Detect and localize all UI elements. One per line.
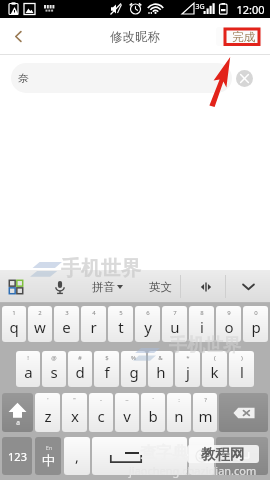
- button[interactable]: !: [16, 351, 40, 387]
- staticText: m: [198, 406, 213, 426]
- button[interactable]: Shift: [2, 393, 33, 432]
- button[interactable]: Keyboard menu: [3, 270, 29, 303]
- staticText: c: [97, 406, 105, 426]
- button[interactable]: %: [121, 351, 146, 387]
- staticText: 1: [12, 309, 16, 317]
- staticText: 5: [119, 309, 123, 317]
- button[interactable]: Back: [0, 18, 36, 55]
- staticText: h: [156, 362, 166, 382]
- button[interactable]: 完成: [216, 27, 262, 46]
- button[interactable]: Backspace: [219, 393, 268, 432]
- button[interactable]: Hide keyboard: [233, 270, 263, 303]
- staticText: d: [75, 362, 85, 382]
- staticText: $: [105, 354, 109, 362]
- button[interactable]: ): [229, 351, 254, 387]
- staticText: `: [152, 396, 154, 404]
- staticText: 7: [173, 309, 177, 317]
- staticText: 8: [200, 309, 204, 317]
- staticText: 奈: [18, 71, 29, 85]
- button[interactable]: 4: [81, 306, 106, 342]
- staticText: *: [186, 354, 190, 362]
- staticText: t: [118, 317, 124, 337]
- staticText: 4: [92, 309, 96, 317]
- button[interactable]: @: [42, 351, 66, 387]
- button[interactable]: Resize keyboard: [192, 270, 220, 303]
- staticText: ~: [125, 396, 129, 404]
- button[interactable]: 拼音: [92, 270, 123, 303]
- staticText: z: [44, 406, 52, 426]
- button[interactable]: 奈: [11, 63, 232, 93]
- button[interactable]: En: [35, 437, 61, 475]
- staticText: #: [78, 354, 82, 362]
- button[interactable]: :: [167, 393, 191, 432]
- button[interactable]: Space: [92, 437, 187, 475]
- button[interactable]: 5: [108, 306, 133, 342]
- button[interactable]: (: [202, 351, 227, 387]
- staticText: 教程网: [201, 445, 245, 463]
- staticText: p: [251, 317, 261, 337]
- button[interactable]: Enter: [216, 437, 268, 475]
- staticText: r: [90, 317, 97, 337]
- staticText: s: [50, 362, 58, 382]
- button[interactable]: &: [148, 351, 173, 387]
- button[interactable]: *: [175, 351, 200, 387]
- button[interactable]: 6: [135, 306, 160, 342]
- staticText: 完成: [232, 30, 255, 44]
- button[interactable]: 8: [189, 306, 214, 342]
- button[interactable]: 英文: [145, 270, 175, 303]
- staticText: 9: [227, 309, 231, 317]
- button[interactable]: Clear text: [236, 70, 253, 87]
- staticText: ": [73, 396, 76, 404]
- button[interactable]: 9: [216, 306, 241, 342]
- staticText: jiaocheng.chazidian.com: [129, 463, 257, 478]
- staticText: 手机世界: [169, 334, 241, 357]
- staticText: 英文: [149, 280, 172, 294]
- staticText: 3G: [195, 2, 205, 12]
- staticText: 拼音: [92, 280, 115, 294]
- staticText: n: [174, 406, 184, 426]
- staticText: a: [16, 418, 20, 427]
- button[interactable]: #: [68, 351, 92, 387]
- staticText: k: [210, 362, 219, 382]
- staticText: q: [9, 317, 19, 337]
- staticText: i: [200, 317, 204, 337]
- button[interactable]: ": [62, 393, 87, 432]
- staticText: b: [148, 406, 158, 426]
- staticText: f: [104, 362, 110, 382]
- button[interactable]: 2: [28, 306, 52, 342]
- button[interactable]: ~: [115, 393, 139, 432]
- staticText: l: [240, 362, 244, 382]
- staticText: :: [178, 396, 180, 404]
- staticText: 修改昵称: [110, 29, 160, 45]
- button[interactable]: 7: [162, 306, 187, 342]
- button[interactable]: `: [141, 393, 165, 432]
- staticText: x: [71, 406, 79, 426]
- button[interactable]: ?: [193, 393, 217, 432]
- button[interactable]: 1: [2, 306, 26, 342]
- staticText: &: [158, 354, 163, 362]
- button[interactable]: 3: [54, 306, 79, 342]
- staticText: v: [123, 406, 131, 426]
- button[interactable]: -: [89, 393, 113, 432]
- staticText: 123: [8, 449, 27, 464]
- button[interactable]: 0: [243, 306, 268, 342]
- staticText: g: [129, 362, 139, 382]
- staticText: 3: [65, 309, 69, 317]
- staticText: !: [27, 354, 29, 362]
- staticText: ,: [75, 447, 79, 466]
- staticText: ?: [204, 396, 207, 404]
- staticText: 0: [254, 309, 258, 317]
- staticText: u: [170, 317, 180, 337]
- button[interactable]: Voice input: [47, 270, 73, 303]
- staticText: y: [144, 317, 152, 337]
- button[interactable]: ,: [64, 437, 90, 475]
- button[interactable]: $: [94, 351, 119, 387]
- staticText: o: [224, 317, 234, 337]
- staticText: %: [131, 354, 136, 362]
- staticText: 6: [146, 309, 150, 317]
- button[interactable]: Emoji: [189, 437, 214, 475]
- staticText: 2: [38, 309, 42, 317]
- button[interactable]: ': [35, 393, 60, 432]
- staticText: a: [24, 362, 33, 382]
- button[interactable]: 123: [2, 437, 32, 475]
